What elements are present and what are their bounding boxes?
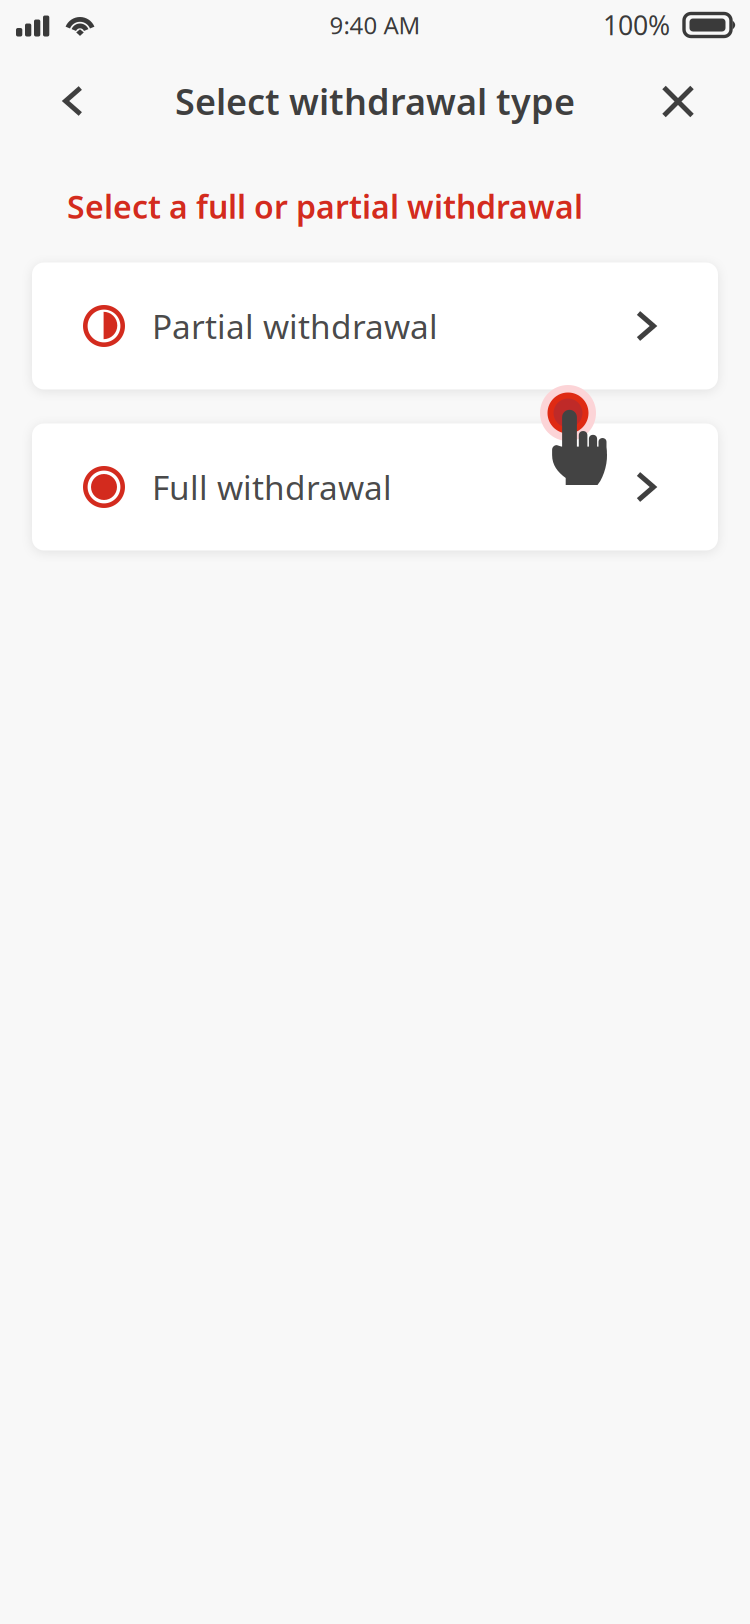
button[interactable]: Back — [41, 69, 105, 133]
button[interactable]: Close — [647, 69, 711, 133]
staticText: Partial withdrawal — [152, 304, 438, 348]
staticText: 100% — [603, 7, 670, 43]
staticText: Full withdrawal — [152, 465, 392, 509]
button[interactable]: Partial withdrawal — [32, 262, 718, 389]
staticText: 9:40 AM — [329, 9, 420, 41]
staticText: Select a full or partial withdrawal — [67, 185, 583, 227]
staticText: Select withdrawal type — [175, 77, 575, 125]
button[interactable]: Full withdrawal — [32, 423, 718, 550]
